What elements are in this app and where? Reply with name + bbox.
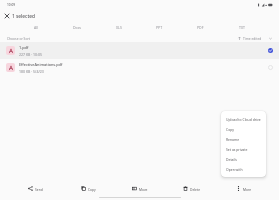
staticText: All (34, 25, 39, 30)
button[interactable]: Details (221, 154, 266, 164)
button[interactable]: Copy (62, 186, 114, 191)
button[interactable]: Upload to Cloud drive (221, 114, 266, 124)
button[interactable]: TXT (221, 25, 262, 30)
button[interactable]: Open with (221, 164, 266, 174)
button[interactable]: PPT (139, 25, 180, 30)
button[interactable]: Select file (266, 46, 275, 55)
button[interactable]: Rename (221, 134, 266, 144)
staticText: Docs (73, 25, 82, 30)
staticText: Upload to Cloud drive (226, 117, 261, 122)
button[interactable]: Move (114, 186, 166, 191)
button[interactable]: EffectiveAnimations.pdf (0, 59, 279, 76)
button[interactable]: Select file (266, 63, 275, 72)
staticText: PDF (197, 25, 204, 30)
staticText: 1.pdf (19, 45, 29, 50)
button[interactable]: Close selection (2, 11, 12, 21)
staticText: 10:09 (7, 3, 16, 7)
staticText: XLS (116, 25, 122, 30)
staticText: Send (35, 187, 43, 191)
staticText: TXT (239, 25, 245, 30)
staticText: EffectiveAnimations.pdf (19, 62, 63, 67)
staticText: 1 selected (12, 13, 36, 20)
button[interactable]: Send (9, 186, 62, 191)
staticText: Open with (226, 167, 243, 172)
staticText: Rename (226, 137, 240, 142)
button[interactable]: PDF (180, 25, 221, 30)
button[interactable]: More (218, 186, 270, 191)
button[interactable]: XLS (98, 25, 139, 30)
staticText: Choose or Sort (7, 36, 30, 40)
staticText: 180 KB · 5/4/23 (19, 69, 44, 74)
button[interactable]: 1.pdf (0, 42, 279, 59)
staticText: Details (226, 157, 237, 162)
staticText: Move (139, 187, 148, 191)
staticText: Delete (190, 187, 201, 191)
staticText: PPT (156, 25, 163, 30)
staticText: Copy (226, 127, 234, 132)
staticText: Copy (88, 187, 96, 191)
staticText: Time edited (243, 36, 262, 40)
button[interactable]: Copy (221, 124, 266, 134)
button[interactable]: Set as private (221, 144, 266, 154)
button[interactable]: Docs (57, 25, 98, 30)
button[interactable]: All (15, 25, 57, 30)
button[interactable]: Time edited (238, 36, 272, 40)
staticText: 227 KB · 10:05 (19, 52, 43, 57)
staticText: More (243, 187, 252, 191)
button[interactable]: Delete (166, 186, 218, 191)
staticText: Set as private (226, 147, 248, 152)
